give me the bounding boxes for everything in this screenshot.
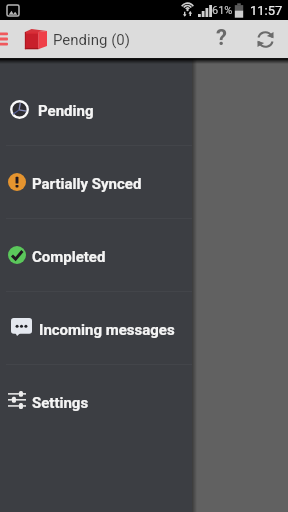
staticText: Pending bbox=[38, 102, 94, 120]
staticText: 11:57 bbox=[250, 3, 283, 18]
button[interactable]: Partially Synced bbox=[0, 146, 192, 218]
staticText: 61% bbox=[212, 4, 233, 17]
button[interactable]: Sync bbox=[244, 20, 288, 58]
button[interactable]: Completed bbox=[0, 219, 192, 291]
button[interactable]: Pending bbox=[0, 73, 192, 145]
staticText: Settings bbox=[32, 394, 89, 412]
button[interactable]: Help bbox=[202, 20, 244, 58]
staticText: Completed bbox=[32, 248, 106, 266]
button[interactable]: Incoming messages bbox=[0, 292, 192, 364]
button[interactable]: Settings bbox=[0, 365, 192, 437]
staticText: Incoming messages bbox=[39, 321, 175, 339]
button[interactable]: Open navigation drawer bbox=[0, 20, 130, 58]
staticText: ? bbox=[216, 25, 227, 51]
staticText: Partially Synced bbox=[32, 175, 142, 193]
staticText: Pending (0) bbox=[53, 31, 130, 49]
